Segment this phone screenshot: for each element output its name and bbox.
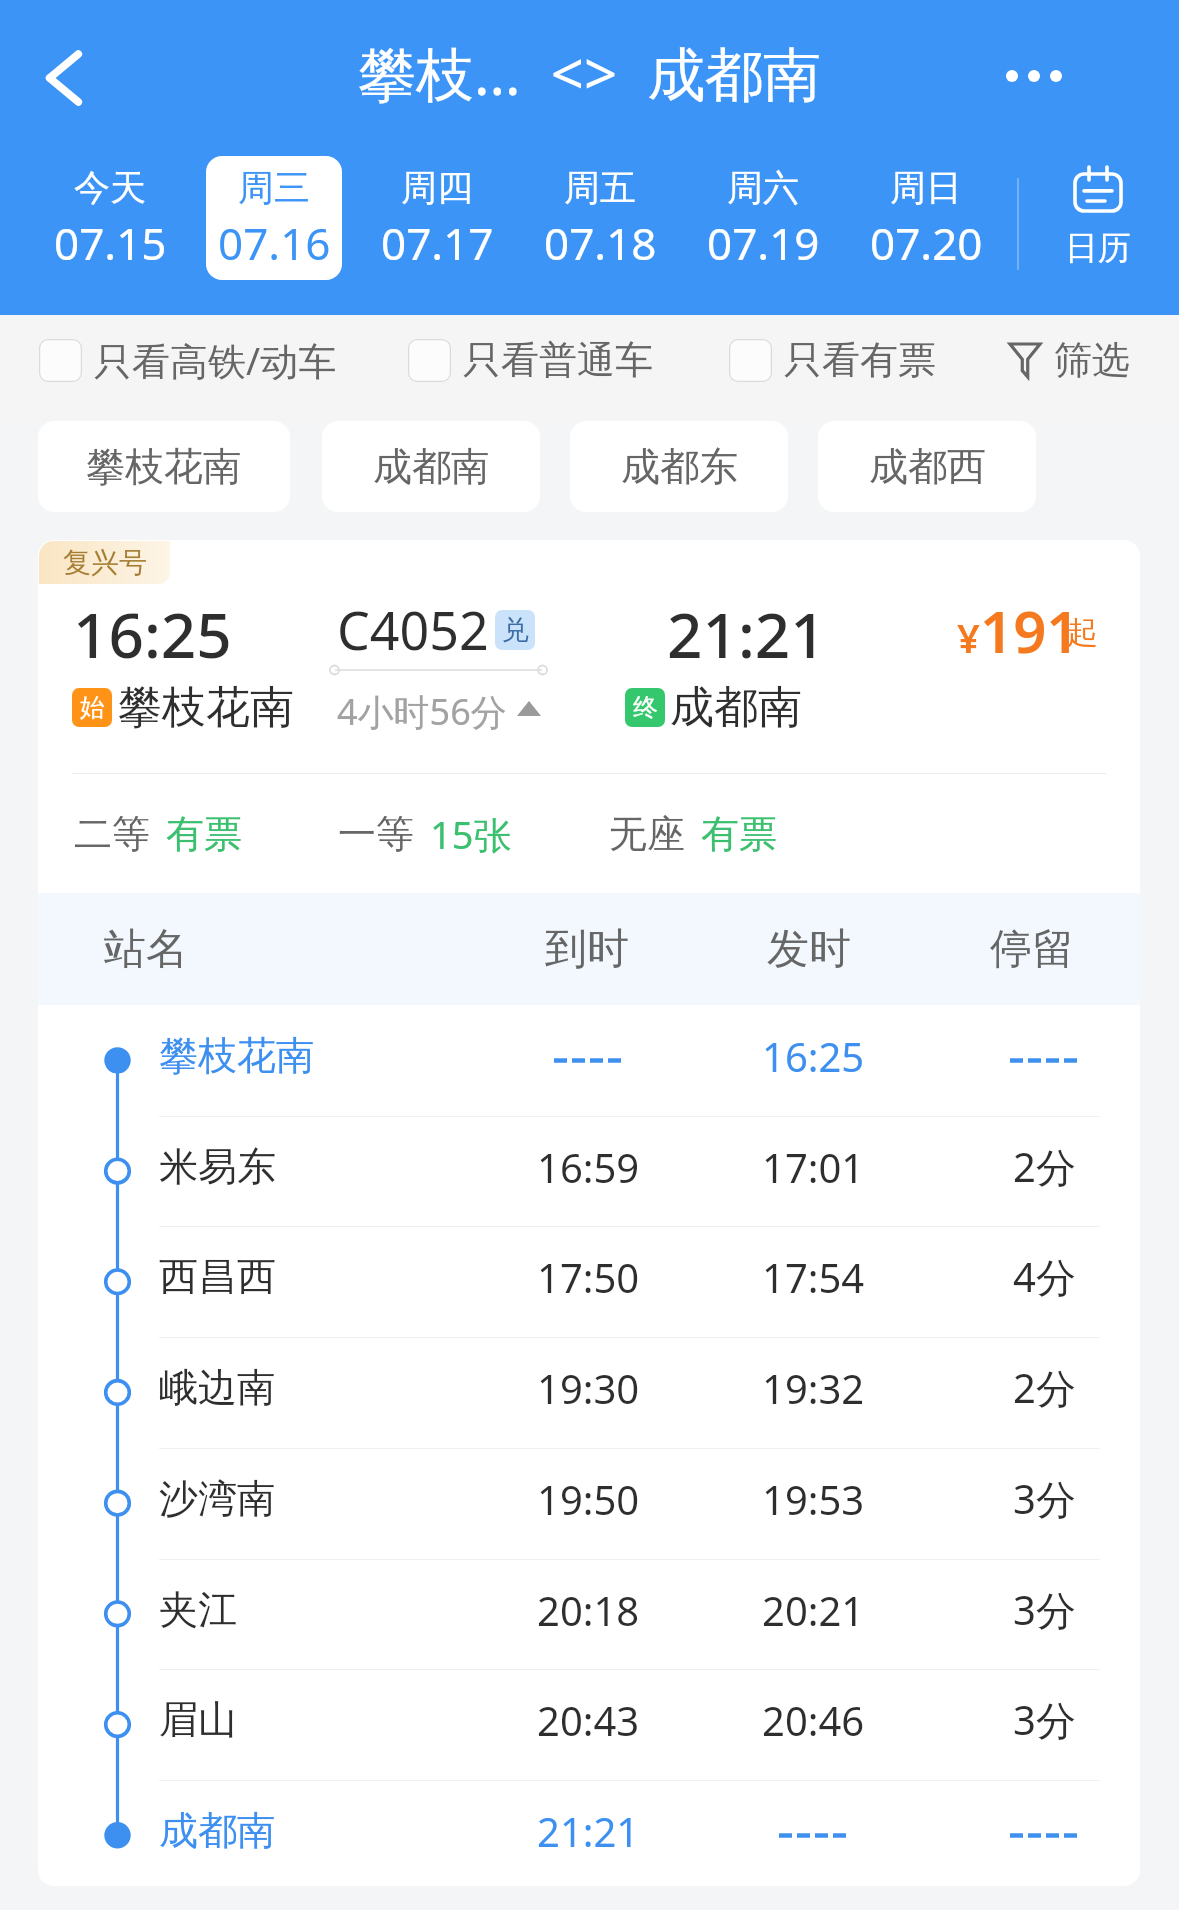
staticText: 19:30 xyxy=(537,1361,640,1415)
staticText: 成都南 xyxy=(159,1806,276,1855)
staticText: 3分 xyxy=(1013,1471,1076,1526)
staticText: ¥ xyxy=(957,610,980,664)
staticText: 周日 xyxy=(890,165,962,210)
staticText: 07.17 xyxy=(381,213,494,273)
staticText: 西昌西 xyxy=(159,1252,276,1301)
staticText: 成都南 xyxy=(670,680,802,735)
staticText: 191 xyxy=(980,591,1080,670)
button[interactable]: 周三 xyxy=(206,156,342,280)
staticText: 21:21 xyxy=(537,1804,640,1858)
staticText: 07.16 xyxy=(218,213,331,273)
staticText: 3分 xyxy=(1013,1582,1076,1637)
staticText: 3分 xyxy=(1013,1692,1076,1747)
button[interactable]: Open calendar xyxy=(1017,156,1179,280)
staticText: 眉山 xyxy=(159,1695,237,1744)
button[interactable]: 成都西 xyxy=(818,421,1036,512)
staticText: 成都东 xyxy=(621,442,738,491)
staticText: 米易东 xyxy=(159,1142,276,1191)
staticText: 07.18 xyxy=(544,213,657,273)
staticText: 沙湾南 xyxy=(159,1474,276,1523)
staticText: 周四 xyxy=(401,165,473,210)
staticText: 17:01 xyxy=(762,1140,865,1194)
staticText: 峨边南 xyxy=(159,1363,276,1412)
staticText: 20:46 xyxy=(762,1693,865,1747)
staticText: 2分 xyxy=(1013,1139,1076,1194)
staticText: 日历 xyxy=(1065,227,1131,269)
button[interactable]: 周四 xyxy=(369,156,505,280)
staticText: 今天 xyxy=(74,165,146,210)
button[interactable]: 米易东 xyxy=(38,1116,1140,1227)
button[interactable]: 峨边南 xyxy=(38,1337,1140,1448)
staticText: 发时 xyxy=(767,923,851,976)
button[interactable]: 只看普通车 xyxy=(408,331,653,389)
button[interactable]: 只看有票 xyxy=(729,331,936,389)
button[interactable]: 今天 xyxy=(42,156,178,280)
staticText: 二等 xyxy=(74,810,150,858)
staticText: 有票 xyxy=(166,810,242,858)
button[interactable]: 周五 xyxy=(532,156,668,280)
staticText: 站名 xyxy=(104,923,188,976)
staticText: 19:32 xyxy=(762,1361,865,1415)
staticText: 成都南 xyxy=(373,442,490,491)
staticText: 17:54 xyxy=(762,1250,865,1304)
button[interactable]: More options xyxy=(982,24,1086,128)
staticText: C4052 xyxy=(337,594,489,665)
staticText: 4分 xyxy=(1013,1249,1076,1304)
staticText: 16:59 xyxy=(537,1140,640,1194)
staticText: 终 xyxy=(633,692,658,723)
staticText: 19:50 xyxy=(537,1472,640,1526)
staticText: 16:25 xyxy=(73,592,232,676)
staticText: 20:43 xyxy=(537,1693,640,1747)
staticText: 到时 xyxy=(545,923,629,976)
button[interactable]: 眉山 xyxy=(38,1669,1140,1780)
staticText: 07.19 xyxy=(707,213,820,273)
button[interactable]: 攀枝花南 xyxy=(38,1005,1140,1116)
button[interactable]: 沙湾南 xyxy=(38,1448,1140,1559)
button[interactable]: 成都南 xyxy=(38,1780,1140,1886)
staticText: 无座 xyxy=(609,810,685,858)
staticText: 攀枝花南 xyxy=(159,1031,315,1080)
staticText: 一等 xyxy=(338,810,414,858)
button[interactable]: 周日 xyxy=(858,156,994,280)
staticText: 周五 xyxy=(564,165,636,210)
staticText: 周六 xyxy=(727,165,799,210)
staticText: 成都西 xyxy=(869,442,986,491)
staticText: 16:25 xyxy=(762,1029,865,1083)
staticText: 只看普通车 xyxy=(463,336,653,384)
staticText: 始 xyxy=(80,692,105,723)
button[interactable]: 攀枝花南 xyxy=(38,421,290,512)
button[interactable]: 筛选 xyxy=(1008,331,1130,389)
staticText: 21:21 xyxy=(667,592,826,676)
staticText: 19:53 xyxy=(762,1472,865,1526)
staticText: 只看有票 xyxy=(784,336,936,384)
staticText: 周三 xyxy=(238,165,310,210)
staticText: 复兴号 xyxy=(63,545,147,580)
staticText: 停留 xyxy=(990,923,1074,976)
staticText: 2分 xyxy=(1013,1360,1076,1415)
staticText: 攀枝花南 xyxy=(118,680,294,735)
staticText: 15张 xyxy=(430,808,512,860)
staticText: 07.15 xyxy=(54,213,167,273)
staticText: 4小时56分 xyxy=(337,687,507,736)
button[interactable] xyxy=(38,540,1140,893)
staticText: 07.20 xyxy=(870,213,983,273)
button[interactable]: 西昌西 xyxy=(38,1226,1140,1337)
button[interactable]: 只看高铁/动车 xyxy=(39,331,337,389)
staticText: 兑 xyxy=(502,613,529,647)
staticText: 筛选 xyxy=(1054,336,1130,384)
staticText: 20:18 xyxy=(537,1583,640,1637)
staticText: 20:21 xyxy=(762,1583,865,1637)
button[interactable]: 周六 xyxy=(695,156,831,280)
staticText: 起 xyxy=(1067,613,1098,652)
button[interactable]: 成都南 xyxy=(322,421,540,512)
button[interactable]: 成都东 xyxy=(570,421,788,512)
button[interactable]: 夹江 xyxy=(38,1559,1140,1670)
staticText: 攀枝... <> 成都南 xyxy=(358,33,822,112)
staticText: 17:50 xyxy=(537,1250,640,1304)
staticText: 只看高铁/动车 xyxy=(94,334,337,386)
staticText: 有票 xyxy=(701,810,777,858)
button[interactable]: Back xyxy=(12,26,116,130)
staticText: 夹江 xyxy=(159,1585,237,1634)
staticText: 攀枝花南 xyxy=(86,442,242,491)
